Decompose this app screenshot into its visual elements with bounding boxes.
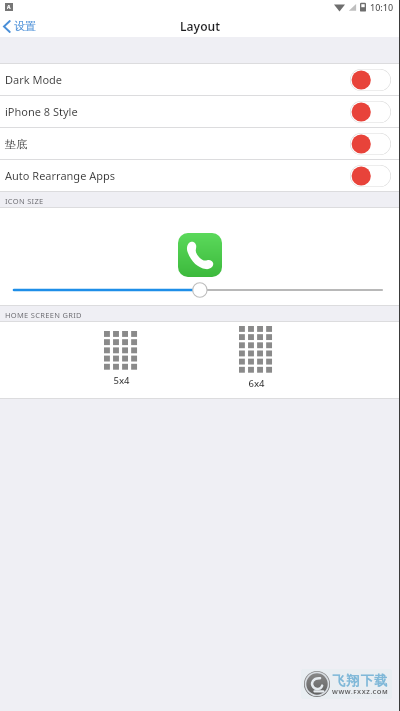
- button[interactable]: Toggle: [350, 69, 391, 91]
- button[interactable]: 设置: [0, 17, 44, 35]
- button[interactable]: Toggle: [350, 101, 391, 123]
- button[interactable]: Toggle: [350, 165, 391, 187]
- button[interactable]: Icon size slider: [12, 280, 384, 300]
- staticText: 6x4: [248, 377, 265, 390]
- staticText: Dark Mode: [5, 72, 350, 87]
- staticText: 10:10: [370, 1, 394, 13]
- staticText: 5x4: [113, 374, 130, 387]
- button[interactable]: Dark Mode: [0, 64, 400, 95]
- staticText: WWW.FXXZ.COM: [332, 688, 389, 696]
- staticText: Layout: [180, 18, 221, 34]
- button[interactable]: Auto Rearrange Apps: [0, 160, 400, 191]
- button[interactable]: iPhone 8 Style: [0, 96, 400, 127]
- button[interactable]: 6x4: [236, 323, 276, 393]
- staticText: 飞翔下载: [332, 672, 388, 688]
- button[interactable]: 5x4: [101, 328, 141, 390]
- button[interactable]: Toggle: [350, 133, 391, 155]
- staticText: 设置: [14, 19, 36, 33]
- staticText: HOME SCREEN GRID: [5, 310, 82, 320]
- staticText: Auto Rearrange Apps: [5, 168, 350, 183]
- staticText: A: [7, 4, 11, 11]
- staticText: iPhone 8 Style: [5, 104, 350, 119]
- button[interactable]: 垫底: [0, 128, 400, 159]
- staticText: ICON SIZE: [5, 196, 44, 206]
- staticText: 垫底: [5, 137, 350, 151]
